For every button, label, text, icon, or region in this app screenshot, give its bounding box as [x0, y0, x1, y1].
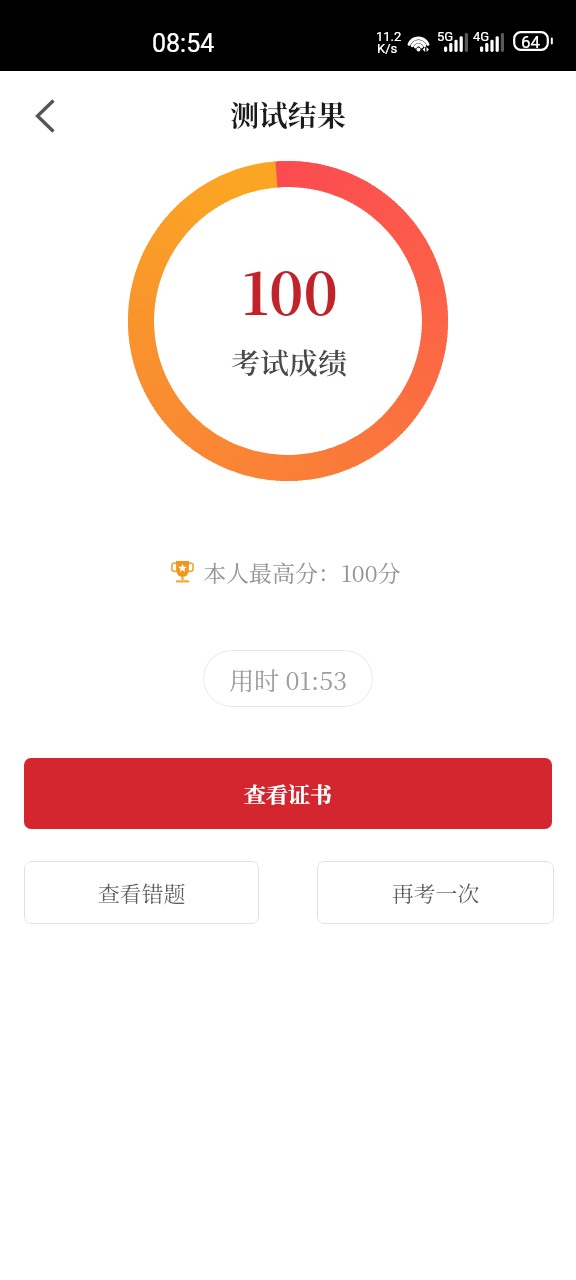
staticText: 考试成绩 — [231, 341, 348, 383]
button[interactable]: Back — [19, 90, 71, 142]
staticText: 测试结果 — [230, 93, 347, 135]
staticText: 08:54 — [152, 29, 215, 58]
button[interactable]: 再考一次 — [317, 861, 554, 924]
staticText: K/s — [377, 41, 398, 56]
staticText: 4G — [473, 29, 490, 44]
staticText: 5G — [437, 29, 454, 44]
staticText: 本人最高分：100分 — [203, 556, 401, 589]
button[interactable]: 查看错题 — [24, 861, 259, 924]
staticText: 11.2 — [376, 29, 402, 44]
staticText: 查看错题 — [97, 877, 186, 909]
button[interactable]: 用时 01:53 — [203, 650, 373, 707]
staticText: 100 — [242, 248, 338, 331]
button[interactable]: 查看证书 — [24, 758, 552, 829]
staticText: 再考一次 — [391, 877, 480, 909]
staticText: 用时 01:53 — [229, 661, 348, 697]
staticText: 查看证书 — [244, 778, 333, 810]
staticText: 64 — [521, 32, 541, 52]
